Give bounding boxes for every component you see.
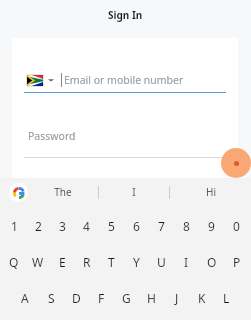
staticText: J: [175, 290, 179, 306]
staticText: Y: [133, 254, 140, 270]
staticText: O: [207, 254, 217, 270]
staticText: G: [122, 290, 131, 306]
button[interactable]: I: [174, 244, 199, 280]
staticText: 5: [108, 218, 115, 234]
button[interactable]: 4: [74, 208, 99, 244]
button[interactable]: 8: [174, 208, 199, 244]
staticText: Password: [28, 129, 76, 143]
staticText: The: [54, 185, 72, 199]
button[interactable]: Email or mobile number: [12, 68, 238, 92]
button[interactable]: Y: [124, 244, 149, 280]
button[interactable]: 6: [124, 208, 149, 244]
staticText: H: [147, 290, 156, 306]
button[interactable]: L: [214, 280, 239, 316]
staticText: W: [32, 254, 44, 270]
button[interactable]: H: [139, 280, 164, 316]
button[interactable]: F: [89, 280, 114, 316]
staticText: Hi: [206, 185, 216, 199]
button[interactable]: W: [26, 244, 50, 280]
staticText: Q: [9, 254, 19, 270]
staticText: 0: [233, 218, 240, 234]
button[interactable]: Help: [221, 148, 251, 178]
button[interactable]: G: [114, 280, 139, 316]
staticText: 4: [83, 218, 90, 234]
staticText: P: [233, 254, 241, 270]
staticText: 8: [183, 218, 190, 234]
button[interactable]: A: [12, 280, 38, 316]
staticText: 2: [35, 218, 42, 234]
staticText: R: [83, 254, 91, 270]
staticText: I: [184, 254, 189, 270]
staticText: U: [157, 254, 166, 270]
button[interactable]: The: [28, 178, 98, 206]
button[interactable]: 0: [224, 208, 249, 244]
button[interactable]: Q: [2, 244, 26, 280]
staticText: Sign In: [108, 8, 143, 22]
staticText: 6: [133, 218, 140, 234]
button[interactable]: Hi: [170, 178, 251, 206]
button[interactable]: D: [64, 280, 89, 316]
button[interactable]: 3: [50, 208, 74, 244]
button[interactable]: R: [74, 244, 99, 280]
staticText: 9: [208, 218, 215, 234]
staticText: E: [59, 254, 66, 270]
button[interactable]: J: [164, 280, 189, 316]
staticText: S: [48, 290, 55, 306]
button[interactable]: 2: [26, 208, 50, 244]
staticText: 3: [59, 218, 66, 234]
staticText: L: [223, 290, 230, 306]
staticText: D: [72, 290, 81, 306]
staticText: T: [108, 254, 115, 270]
button[interactable]: O: [199, 244, 224, 280]
button[interactable]: 1: [2, 208, 26, 244]
button[interactable]: E: [50, 244, 74, 280]
button[interactable]: 7: [149, 208, 174, 244]
button[interactable]: Google: [9, 183, 28, 202]
staticText: I: [132, 185, 136, 199]
button[interactable]: T: [99, 244, 124, 280]
button[interactable]: U: [149, 244, 174, 280]
button[interactable]: 9: [199, 208, 224, 244]
staticText: 7: [158, 218, 165, 234]
button[interactable]: S: [38, 280, 64, 316]
staticText: F: [98, 290, 105, 306]
button[interactable]: Password: [12, 126, 238, 146]
staticText: A: [21, 290, 29, 306]
button[interactable]: P: [224, 244, 249, 280]
staticText: 1: [11, 218, 18, 234]
button[interactable]: 5: [99, 208, 124, 244]
staticText: Email or mobile number: [64, 73, 184, 87]
button[interactable]: K: [189, 280, 214, 316]
staticText: K: [198, 290, 206, 306]
button[interactable]: I: [99, 178, 169, 206]
